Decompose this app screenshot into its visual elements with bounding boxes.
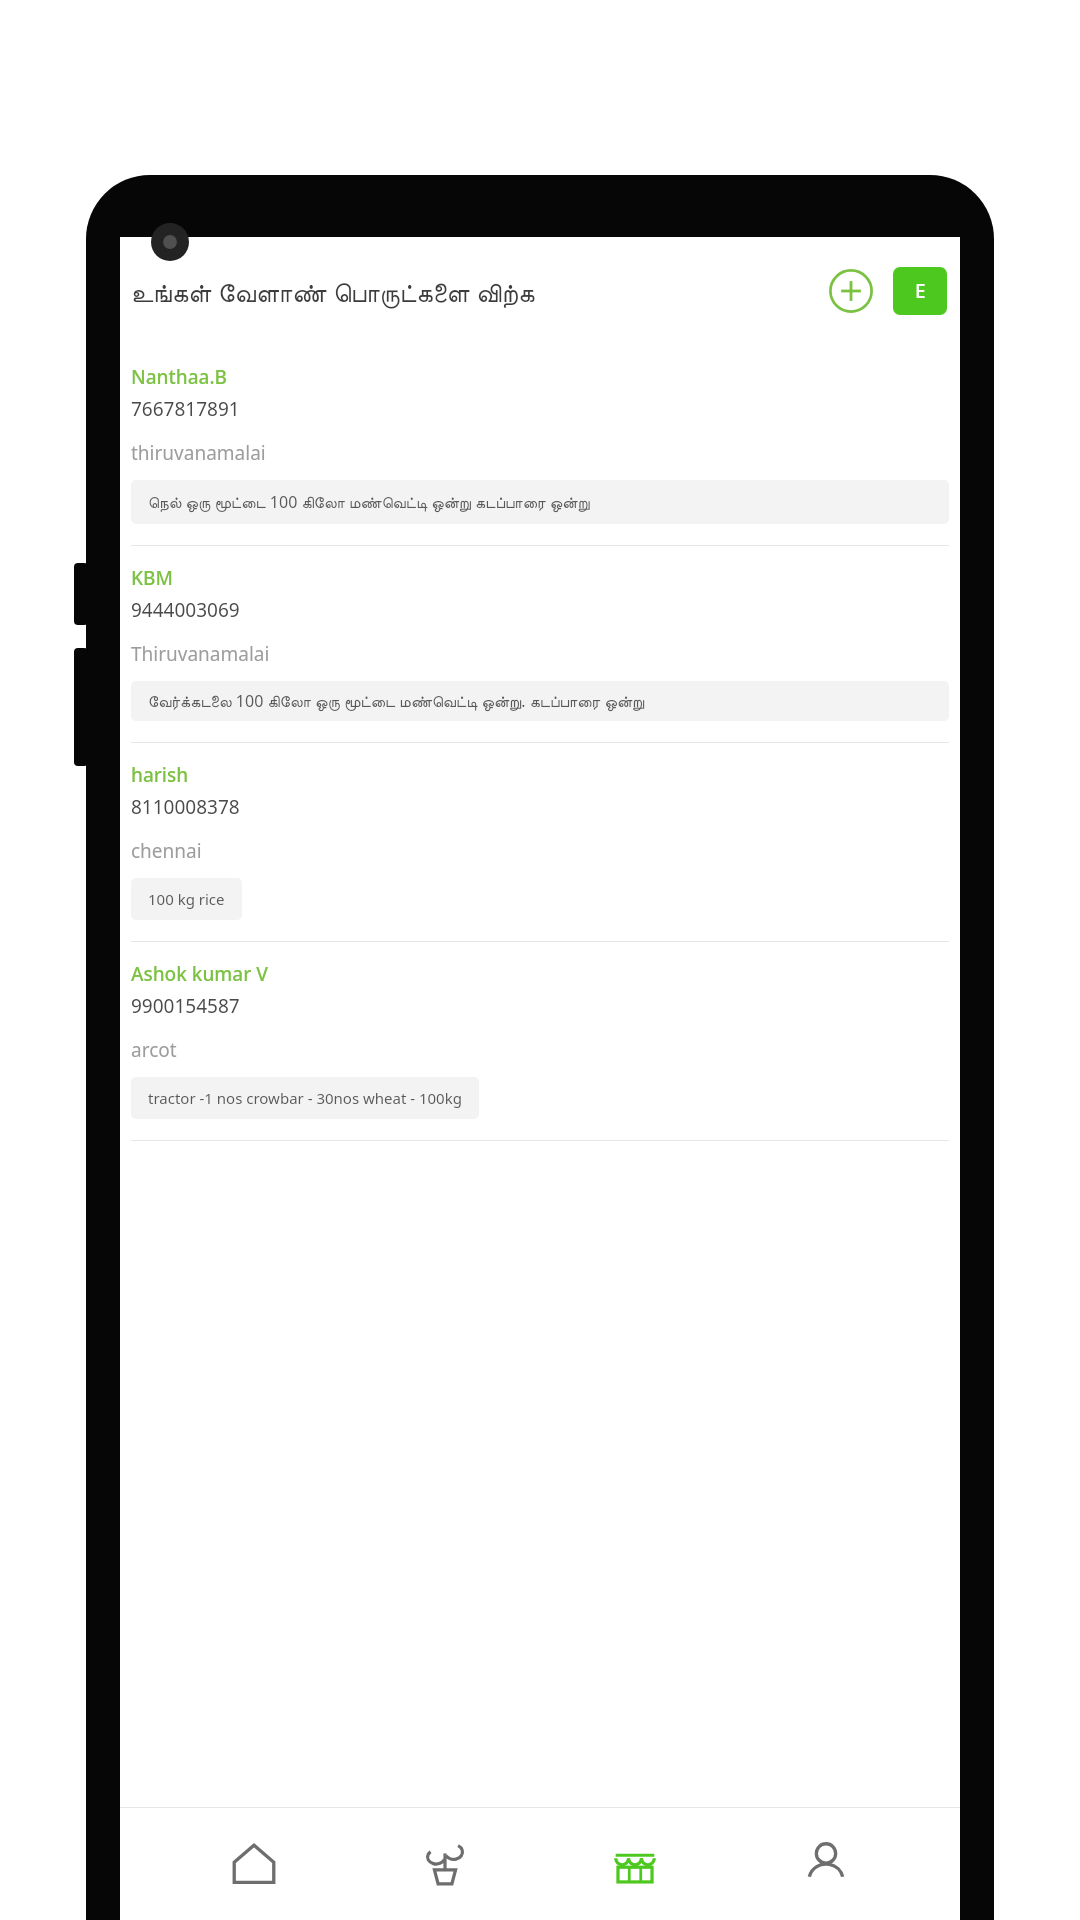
- staticText: 9900154587: [131, 993, 240, 1019]
- button[interactable]: E: [893, 267, 947, 315]
- staticText: chennai: [131, 838, 202, 864]
- button[interactable]: Profile: [770, 1815, 882, 1913]
- staticText: Ashok kumar V: [131, 961, 268, 987]
- staticText: E: [915, 278, 926, 304]
- button[interactable]: Ashok kumar V: [120, 942, 960, 1141]
- staticText: arcot: [131, 1037, 177, 1063]
- staticText: KBM: [131, 565, 173, 591]
- staticText: harish: [131, 762, 189, 788]
- staticText: Nanthaa.B: [131, 364, 228, 390]
- button[interactable]: harish: [120, 743, 960, 942]
- button[interactable]: KBM: [120, 546, 960, 743]
- button[interactable]: Nanthaa.B: [120, 345, 960, 546]
- staticText: 7667817891: [131, 396, 240, 422]
- staticText: 8110008378: [131, 794, 240, 820]
- staticText: thiruvanamalai: [131, 440, 266, 466]
- staticText: உங்கள் வேளாண் பொருட்களை விற்க: [131, 274, 813, 309]
- button[interactable]: Home: [198, 1815, 310, 1913]
- staticText: Thiruvanamalai: [131, 641, 270, 667]
- staticText: 100 kg rice: [148, 889, 225, 909]
- staticText: வேர்க்கடலை 100 கிலோ ஒரு மூட்டை மண்வெட்டி…: [148, 690, 645, 712]
- staticText: நெல் ஒரு மூட்டை 100 கிலோ மண்வெட்டி ஒன்று…: [148, 491, 590, 513]
- button[interactable]: Add new listing: [823, 263, 879, 319]
- button[interactable]: Market: [579, 1815, 691, 1913]
- staticText: tractor -1 nos crowbar - 30nos wheat - 1…: [148, 1088, 462, 1108]
- staticText: 9444003069: [131, 597, 240, 623]
- button[interactable]: My crops: [389, 1815, 501, 1913]
